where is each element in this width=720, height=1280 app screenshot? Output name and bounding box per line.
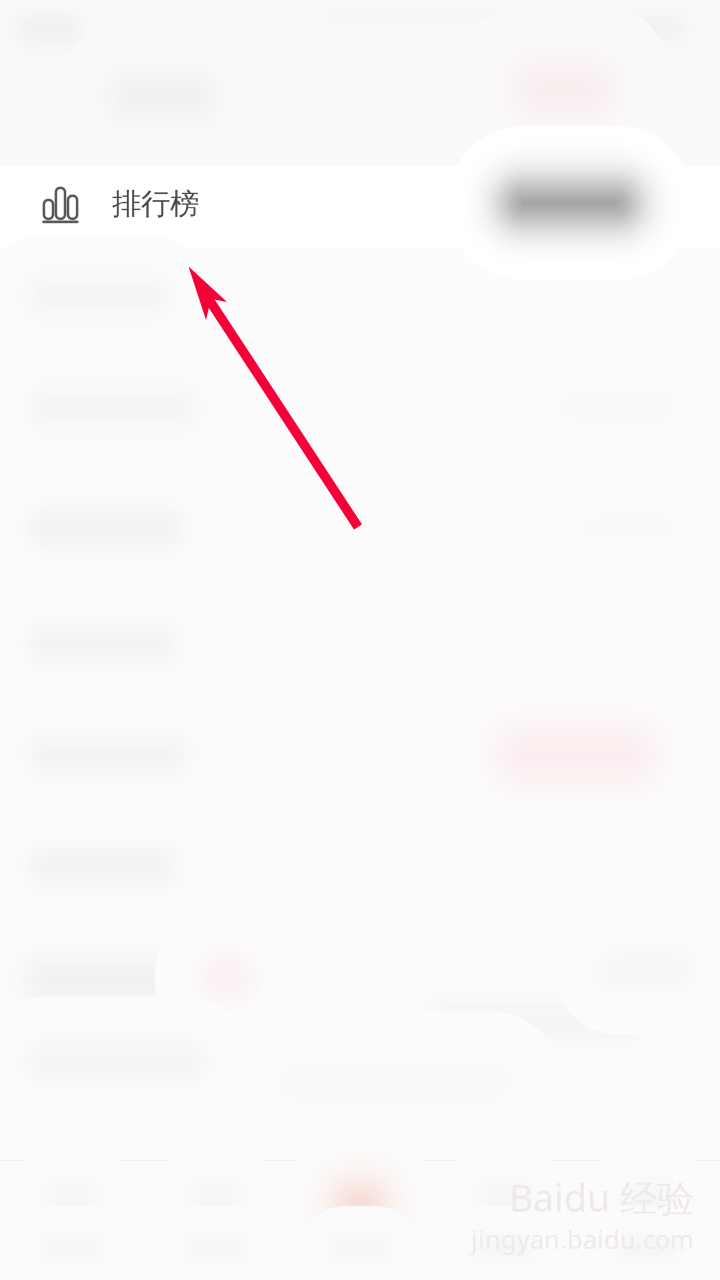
button[interactable]: Tab 3 bbox=[0, 0, 720, 1280]
button[interactable]: 排行榜 bbox=[0, 0, 720, 1280]
staticText: jingyan.baidu.com bbox=[471, 1222, 694, 1256]
staticText: Baidu 经验 bbox=[509, 1173, 694, 1222]
button[interactable]: Tab 4 bbox=[0, 0, 720, 1280]
staticText: 排行榜 bbox=[112, 186, 199, 222]
button[interactable]: Tab 1 bbox=[0, 0, 720, 1280]
button[interactable]: Tab 5 bbox=[0, 0, 720, 1280]
button[interactable]: Tab 2 bbox=[0, 0, 720, 1280]
